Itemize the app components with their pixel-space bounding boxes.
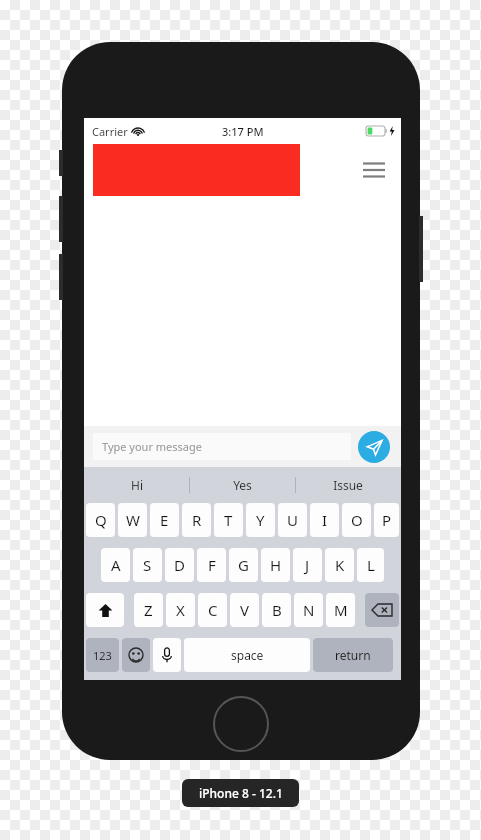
button[interactable]: U <box>278 503 307 537</box>
staticText: iPhone 8 - 12.1 <box>199 785 283 801</box>
button[interactable]: Yes <box>189 467 295 503</box>
button[interactable]: Type your message <box>93 433 351 460</box>
button[interactable]: key <box>86 593 124 627</box>
staticText: N <box>303 600 315 620</box>
staticText: L <box>367 555 375 575</box>
staticText: X <box>176 600 185 620</box>
button[interactable]: H <box>261 548 290 582</box>
button[interactable]: O <box>342 503 371 537</box>
button[interactable]: B <box>262 593 291 627</box>
staticText: O <box>351 510 363 530</box>
staticText: return <box>335 647 371 663</box>
staticText: Z <box>144 600 153 620</box>
button[interactable]: N <box>294 593 323 627</box>
staticText: D <box>174 555 185 575</box>
button[interactable]: W <box>118 503 147 537</box>
button[interactable]: key <box>365 593 399 627</box>
staticText: M <box>334 600 348 620</box>
staticText: V <box>240 600 250 620</box>
button[interactable]: V <box>230 593 259 627</box>
button[interactable]: T <box>214 503 243 537</box>
staticText: 3:17 PM <box>222 124 264 139</box>
staticText: Yes <box>233 477 252 493</box>
button[interactable]: I <box>310 503 339 537</box>
button[interactable]: return <box>313 638 393 672</box>
button[interactable]: key <box>122 638 150 672</box>
staticText: J <box>305 555 310 575</box>
button[interactable]: Send <box>358 431 390 463</box>
staticText: P <box>382 510 392 530</box>
staticText: W <box>126 510 140 530</box>
staticText: Hi <box>131 477 143 493</box>
button[interactable]: R <box>182 503 211 537</box>
staticText: Q <box>95 510 107 530</box>
staticText: R <box>192 510 202 530</box>
button[interactable]: K <box>325 548 354 582</box>
button[interactable]: D <box>165 548 194 582</box>
staticText: space <box>231 647 264 663</box>
staticText: Issue <box>333 477 363 493</box>
button[interactable]: A <box>101 548 130 582</box>
button[interactable]: E <box>150 503 179 537</box>
staticText: T <box>224 510 233 530</box>
button[interactable]: 123 <box>86 638 119 672</box>
button[interactable]: Hi <box>84 467 189 503</box>
button[interactable]: Q <box>86 503 115 537</box>
button[interactable]: G <box>229 548 258 582</box>
button[interactable]: F <box>197 548 226 582</box>
button[interactable]: M <box>326 593 355 627</box>
staticText: Carrier <box>92 124 128 139</box>
staticText: F <box>208 555 216 575</box>
staticText: G <box>238 555 249 575</box>
button[interactable]: J <box>293 548 322 582</box>
button[interactable]: S <box>133 548 162 582</box>
button[interactable]: C <box>198 593 227 627</box>
staticText: H <box>270 555 282 575</box>
button[interactable]: Y <box>246 503 275 537</box>
staticText: I <box>322 510 328 530</box>
button[interactable]: Menu <box>352 148 396 192</box>
staticText: S <box>143 555 152 575</box>
button[interactable]: Z <box>134 593 163 627</box>
staticText: C <box>208 600 218 620</box>
button[interactable]: P <box>374 503 399 537</box>
staticText: K <box>335 555 345 575</box>
staticText: Y <box>256 510 265 530</box>
button[interactable]: Issue <box>295 467 401 503</box>
button[interactable]: X <box>166 593 195 627</box>
staticText: B <box>272 600 282 620</box>
button[interactable]: key <box>153 638 181 672</box>
staticText: Type your message <box>102 439 202 454</box>
staticText: 123 <box>93 648 112 663</box>
button[interactable]: space <box>184 638 310 672</box>
staticText: U <box>287 510 298 530</box>
button[interactable]: L <box>357 548 384 582</box>
staticText: E <box>160 510 169 530</box>
staticText: A <box>111 555 121 575</box>
